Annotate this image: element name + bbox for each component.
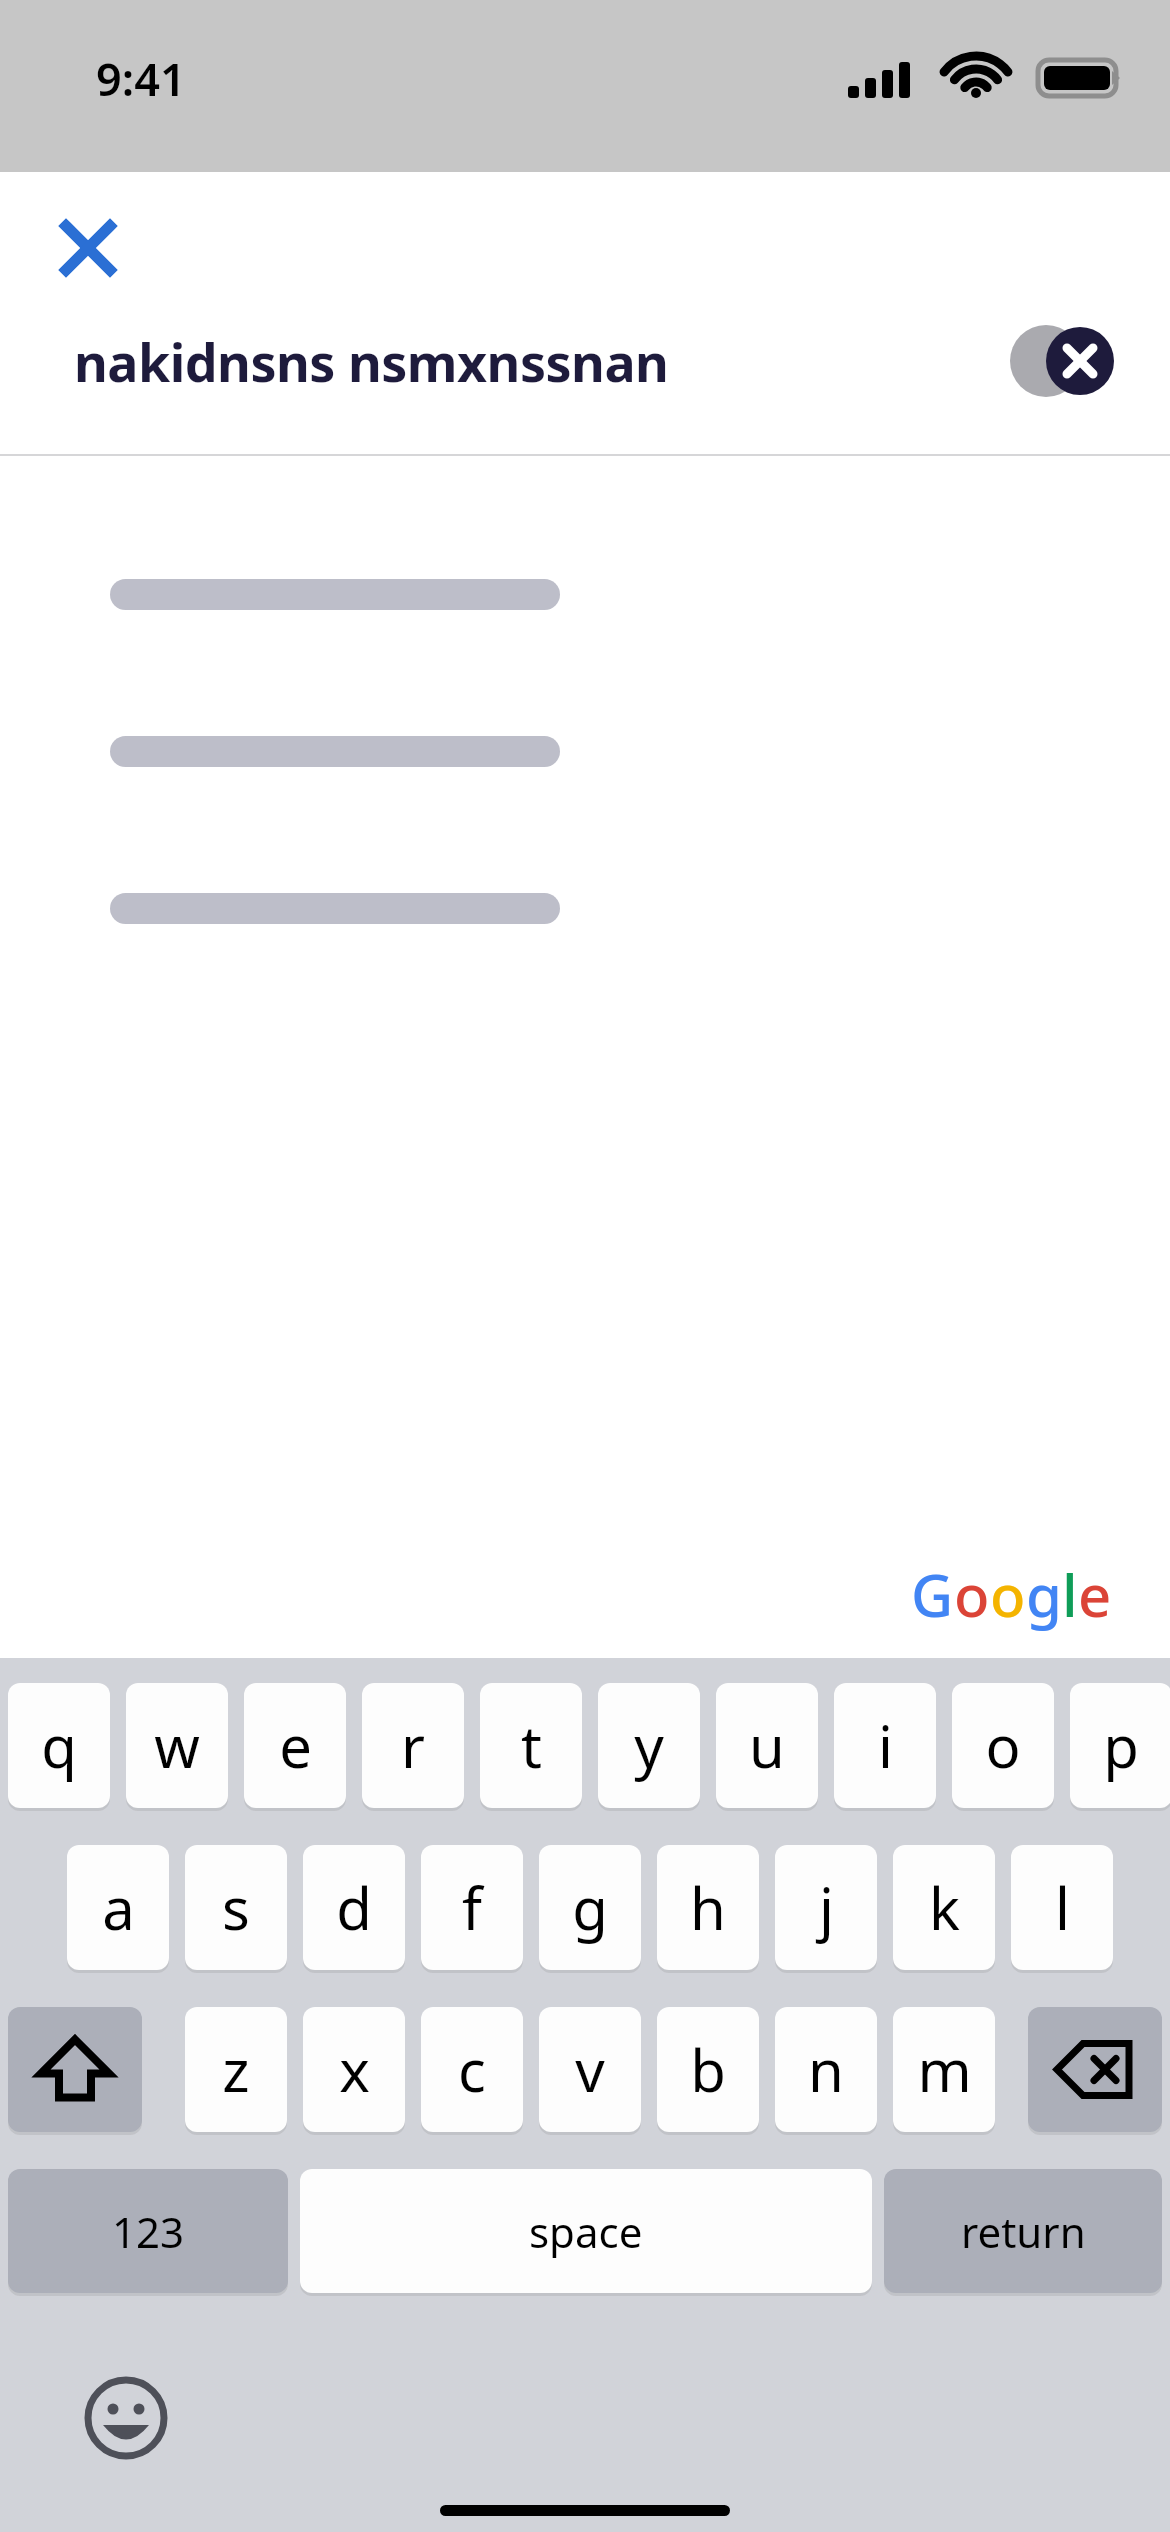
button[interactable]: n xyxy=(775,2007,877,2132)
button[interactable]: space xyxy=(300,2169,872,2293)
button[interactable]: b xyxy=(657,2007,759,2132)
staticText: i xyxy=(878,1706,893,1785)
staticText: x xyxy=(339,2030,370,2109)
staticText: 123 xyxy=(112,2203,185,2260)
button[interactable]: 123 xyxy=(8,2169,288,2293)
staticText: return xyxy=(961,2203,1086,2260)
button[interactable]: y xyxy=(598,1683,700,1808)
staticText: s xyxy=(222,1868,250,1947)
staticText: o xyxy=(985,1706,1021,1785)
staticText: b xyxy=(690,2030,726,2109)
staticText: nakidnsns nsmxnssnan xyxy=(74,326,1002,397)
staticText: q xyxy=(41,1706,77,1785)
staticText: p xyxy=(1103,1706,1139,1785)
staticText: y xyxy=(634,1706,664,1785)
staticText: f xyxy=(462,1868,482,1947)
button[interactable]: c xyxy=(421,2007,523,2132)
button[interactable]: r xyxy=(362,1683,464,1808)
button[interactable]: w xyxy=(126,1683,228,1808)
button[interactable]: l xyxy=(1011,1845,1113,1970)
staticText: v xyxy=(575,2030,605,2109)
staticText: d xyxy=(336,1868,372,1947)
button[interactable]: Emoji xyxy=(78,2370,174,2466)
button[interactable]: Backspace xyxy=(1028,2007,1162,2132)
button[interactable]: z xyxy=(185,2007,287,2132)
staticText: m xyxy=(917,2030,972,2109)
button[interactable]: return xyxy=(884,2169,1162,2293)
button[interactable]: Close xyxy=(40,200,136,296)
button[interactable]: t xyxy=(480,1683,582,1808)
button[interactable]: i xyxy=(834,1683,936,1808)
staticText: l xyxy=(1055,1868,1070,1947)
staticText: z xyxy=(222,2030,250,2109)
staticText: space xyxy=(529,2203,643,2260)
staticText: 9:41 xyxy=(96,48,186,109)
staticText: o xyxy=(990,1555,1026,1634)
staticText: j xyxy=(819,1868,834,1947)
staticText: g xyxy=(1026,1555,1062,1634)
staticText: o xyxy=(954,1555,990,1634)
staticText: g xyxy=(572,1868,608,1947)
staticText: w xyxy=(154,1706,200,1785)
button[interactable]: g xyxy=(539,1845,641,1970)
staticText: e xyxy=(279,1706,312,1785)
staticText: u xyxy=(749,1706,785,1785)
staticText: G xyxy=(911,1555,954,1634)
staticText: h xyxy=(690,1868,726,1947)
button[interactable]: x xyxy=(303,2007,405,2132)
button[interactable]: Shift xyxy=(8,2007,142,2132)
button[interactable]: Clear xyxy=(1002,321,1110,401)
staticText: k xyxy=(929,1868,960,1947)
staticText: l xyxy=(1062,1555,1078,1634)
button[interactable]: u xyxy=(716,1683,818,1808)
button[interactable]: f xyxy=(421,1845,523,1970)
button[interactable]: d xyxy=(303,1845,405,1970)
staticText: r xyxy=(401,1706,425,1785)
staticText: e xyxy=(1078,1555,1112,1634)
button[interactable]: a xyxy=(67,1845,169,1970)
button[interactable]: h xyxy=(657,1845,759,1970)
button[interactable]: v xyxy=(539,2007,641,2132)
staticText: a xyxy=(102,1868,135,1947)
button[interactable]: q xyxy=(8,1683,110,1808)
button[interactable]: k xyxy=(893,1845,995,1970)
button[interactable]: p xyxy=(1070,1683,1170,1808)
staticText: n xyxy=(808,2030,844,2109)
button[interactable]: o xyxy=(952,1683,1054,1808)
button[interactable]: e xyxy=(244,1683,346,1808)
button[interactable]: j xyxy=(775,1845,877,1970)
staticText: c xyxy=(458,2030,486,2109)
button[interactable]: s xyxy=(185,1845,287,1970)
button[interactable]: m xyxy=(893,2007,995,2132)
staticText: t xyxy=(521,1706,542,1785)
